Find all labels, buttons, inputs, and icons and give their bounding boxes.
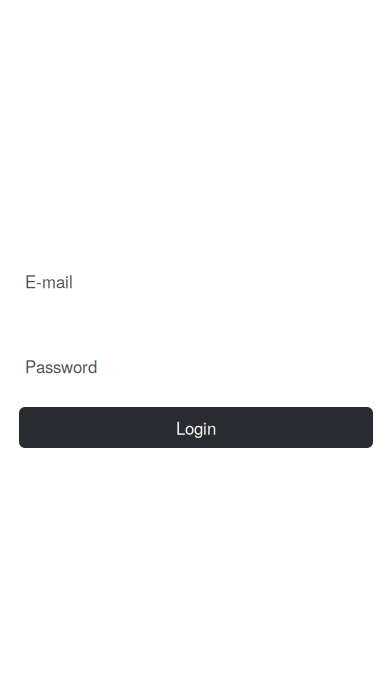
button[interactable]: Login: [19, 407, 373, 448]
staticText: E-mail: [25, 269, 73, 293]
button[interactable]: E-mail: [0, 264, 392, 298]
staticText: Password: [25, 354, 97, 378]
button[interactable]: Password: [0, 349, 392, 383]
staticText: Login: [176, 416, 216, 439]
